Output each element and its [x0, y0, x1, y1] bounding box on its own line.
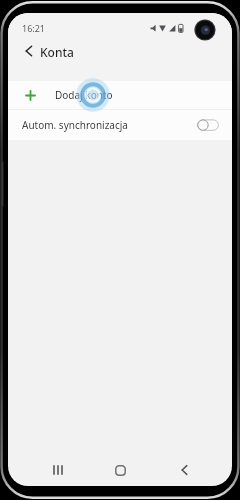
- button[interactable]: [170, 456, 198, 484]
- button[interactable]: [16, 39, 42, 63]
- button[interactable]: Dodaj konto: [8, 81, 232, 109]
- button[interactable]: Autom. synchronizacja: [8, 110, 232, 140]
- button[interactable]: [44, 456, 72, 484]
- staticText: 16:21: [22, 22, 46, 34]
- staticText: Autom. synchronizacja: [22, 118, 128, 132]
- button[interactable]: [106, 456, 134, 484]
- staticText: Konta: [40, 44, 74, 60]
- staticText: Dodaj konto: [55, 88, 113, 102]
